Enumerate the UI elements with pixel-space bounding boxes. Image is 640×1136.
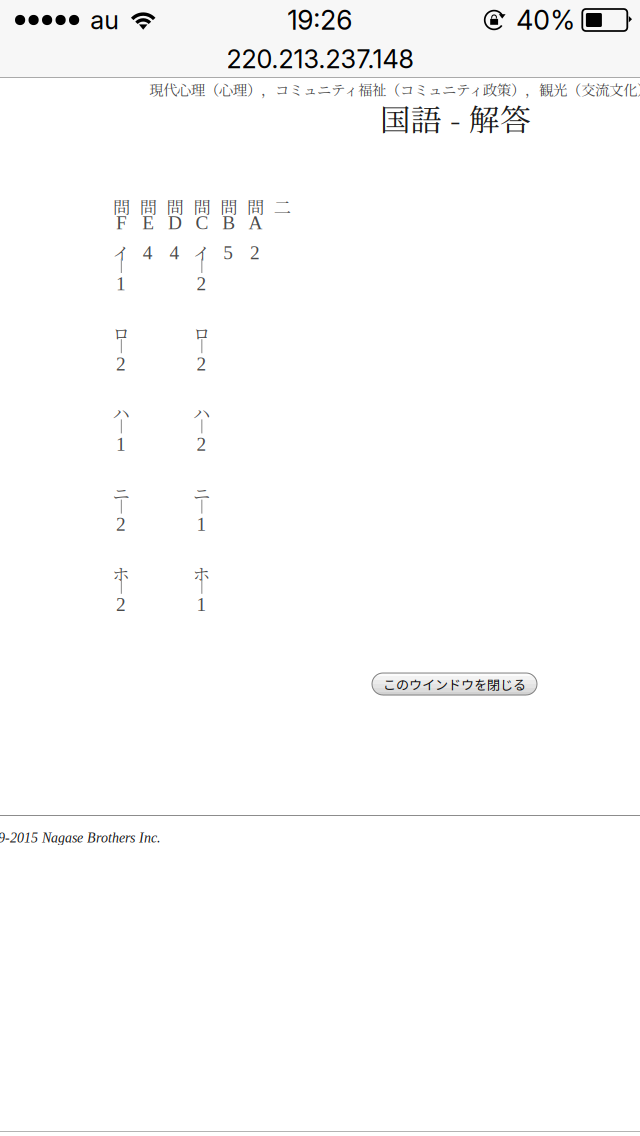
button[interactable]: このウインドウを閉じる [372,673,537,695]
staticText: ハ [193,400,210,425]
staticText: F [116,212,127,233]
staticText: 問 [167,194,184,219]
staticText: 1 [196,514,206,535]
staticText: 4 [143,242,153,263]
staticText: 2 [196,433,206,455]
staticText: イ [193,240,210,265]
staticText: 問 [113,194,130,219]
staticText: A [248,212,262,233]
staticText: 2 [116,514,126,535]
staticText: 2 [196,273,206,294]
staticText: 国語 - 解答 [380,96,531,140]
staticText: 19:26 [287,4,352,36]
staticText: C [195,212,208,233]
staticText: 2 [196,353,206,375]
staticText: 1 [116,273,126,294]
staticText: B [222,212,235,233]
staticText: 1 [196,594,206,615]
staticText: 2 [116,594,126,615]
button[interactable]: 220.213.237.148 [0,40,640,78]
staticText: 問 [247,194,264,219]
staticText: 5 [223,242,233,263]
staticText: ニ [193,481,210,505]
staticText: 40% [516,4,575,36]
staticText: ロ [112,320,129,345]
staticText: このウインドウを閉じる [383,674,526,693]
staticText: 現代心理（心理），コミュニティ福祉（コミュニティ政策），観光（交流文化），経営 [149,79,640,100]
staticText: ニ [112,481,129,505]
staticText: ホ [112,561,129,586]
staticText: 2 [250,242,260,263]
staticText: 2 [116,353,126,375]
staticText: イ [112,240,129,265]
staticText: 問 [220,194,237,219]
staticText: 問 [193,194,210,219]
staticText: 問 [140,194,157,219]
staticText: ハ [112,400,129,425]
staticText: 220.213.237.148 [226,44,413,74]
staticText: 1 [116,433,126,455]
staticText: ロ [193,320,210,345]
staticText: au [90,5,119,35]
staticText: E [142,212,154,233]
staticText: ホ [193,561,210,586]
staticText: 9-2015 Nagase Brothers Inc. [0,830,161,845]
staticText: 二 [274,194,291,219]
staticText: D [168,212,182,233]
staticText: 4 [170,242,180,263]
